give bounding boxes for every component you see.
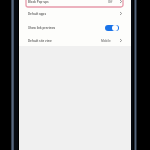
button[interactable]: Default site view, Mobile (28, 34, 122, 47)
button[interactable]: Default apps (28, 7, 122, 20)
staticText: Off (108, 0, 113, 4)
staticText: Mobile (101, 39, 111, 43)
staticText: Default site view (28, 39, 52, 43)
staticText: Block Pop-ups (28, 0, 49, 4)
button[interactable]: Show link previews toggle, on (105, 25, 119, 31)
button[interactable]: Block Pop-ups, Off (28, 0, 122, 8)
button[interactable]: Show link previews (28, 21, 122, 34)
staticText: Show link previews (28, 26, 56, 30)
staticText: Default apps (28, 12, 47, 16)
